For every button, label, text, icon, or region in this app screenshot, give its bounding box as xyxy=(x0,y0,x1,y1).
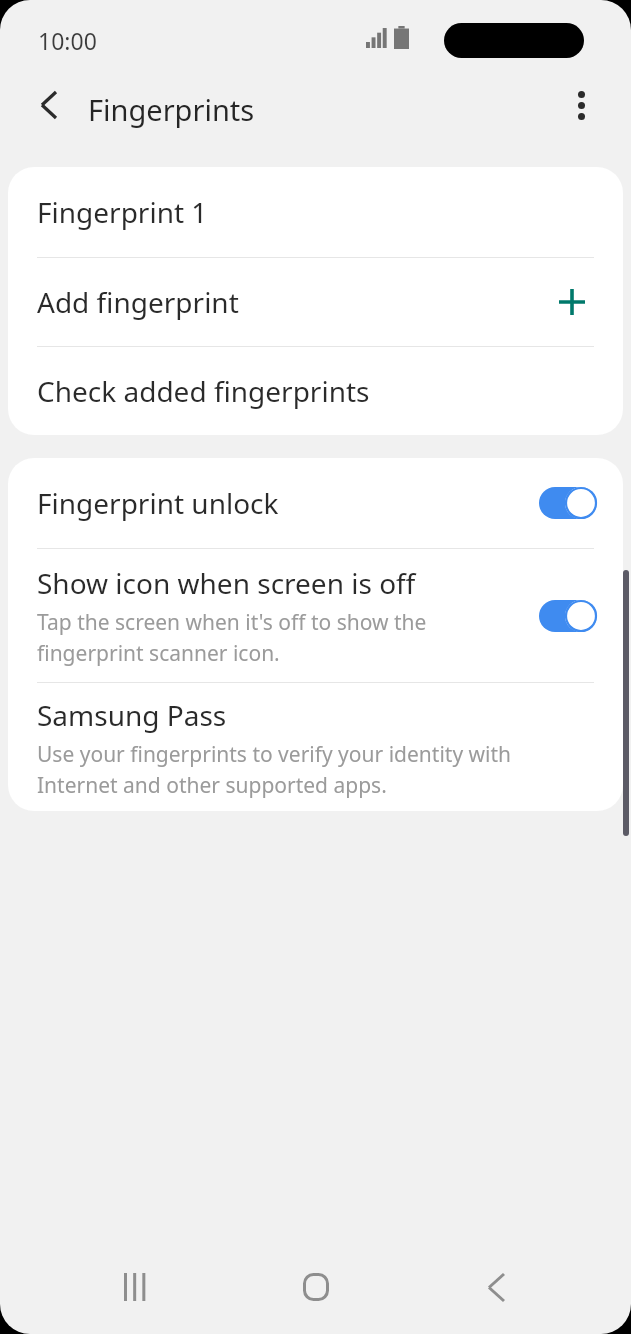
staticText: Check added fingerprints xyxy=(37,372,370,410)
button[interactable]: Check added fingerprints xyxy=(8,347,623,435)
staticText: Samsung Pass xyxy=(37,696,227,734)
staticText: Fingerprints xyxy=(88,90,255,129)
button[interactable]: Fingerprint unlock xyxy=(8,458,623,548)
button[interactable]: Add fingerprint xyxy=(8,258,623,346)
staticText: Tap the screen when it's off to show the… xyxy=(37,608,507,667)
staticText: Fingerprint unlock xyxy=(37,484,279,522)
button[interactable]: Recent apps xyxy=(90,1252,180,1322)
button[interactable]: Show icon when screen is off xyxy=(8,549,623,682)
button[interactable]: More options xyxy=(557,81,605,129)
button[interactable]: Toggle xyxy=(539,487,597,519)
staticText: Use your fingerprints to verify your ide… xyxy=(37,740,527,799)
button[interactable]: Toggle xyxy=(539,600,597,632)
button[interactable]: Fingerprint 1 xyxy=(8,167,623,257)
staticText: Fingerprint 1 xyxy=(37,193,208,231)
staticText: Show icon when screen is off xyxy=(37,564,416,602)
staticText: Add fingerprint xyxy=(37,283,239,321)
button[interactable]: Back xyxy=(451,1252,541,1322)
button[interactable]: Back xyxy=(26,82,72,128)
staticText: 10:00 xyxy=(38,25,97,56)
button[interactable]: Home xyxy=(271,1252,361,1322)
button[interactable]: Samsung Pass xyxy=(8,683,623,811)
